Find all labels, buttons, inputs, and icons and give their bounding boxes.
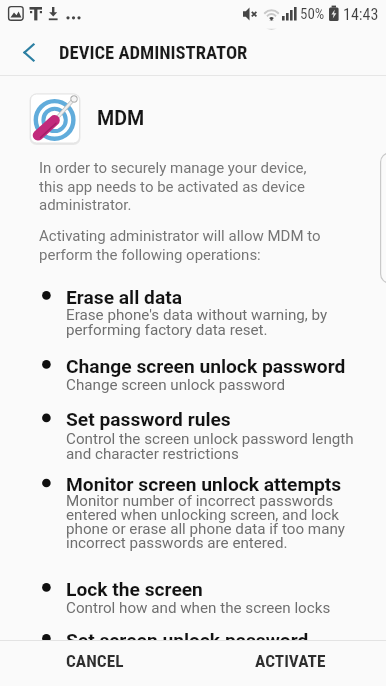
staticText: Control the screen unlock password lengt… bbox=[66, 430, 354, 462]
button[interactable]: CANCEL bbox=[0, 643, 193, 686]
staticText: Control how and when the screen locks bbox=[66, 599, 331, 617]
staticText: Lock the screen bbox=[66, 578, 203, 601]
button[interactable] bbox=[8, 32, 50, 74]
staticText: ACTIVATE bbox=[255, 651, 326, 671]
staticText: Activating administrator will allow MDM … bbox=[39, 227, 321, 263]
staticText: CANCEL bbox=[66, 651, 124, 671]
staticText: Monitor number of incorrect passwords en… bbox=[66, 492, 345, 552]
staticText: MDM bbox=[97, 107, 145, 130]
button[interactable]: ACTIVATE bbox=[193, 643, 386, 686]
staticText: Erase all data bbox=[66, 286, 182, 309]
staticText: Erase phone's data without warning, by p… bbox=[66, 306, 328, 338]
staticText: Monitor screen unlock attempts bbox=[66, 473, 342, 496]
staticText: 50% bbox=[300, 5, 325, 23]
staticText: Set screen unlock password bbox=[66, 629, 309, 652]
staticText: DEVICE ADMINISTRATOR bbox=[59, 42, 248, 64]
staticText: Change screen unlock password bbox=[66, 376, 285, 394]
staticText: In order to securely manage your device,… bbox=[39, 159, 307, 213]
staticText: 14:43 bbox=[343, 5, 379, 24]
staticText: Change screen unlock password bbox=[66, 355, 346, 378]
staticText: Set password rules bbox=[66, 408, 231, 431]
